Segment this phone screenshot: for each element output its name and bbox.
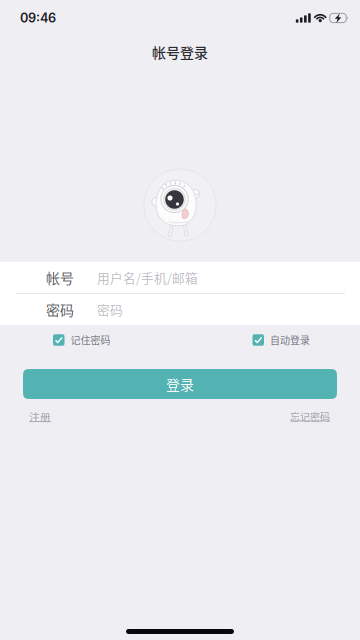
- staticText: 登录: [166, 374, 194, 394]
- staticText: 记住密码: [70, 333, 110, 347]
- staticText: 密码: [46, 299, 74, 320]
- button[interactable]: 自动登录: [252, 330, 310, 350]
- staticText: 忘记密码: [290, 409, 330, 424]
- staticText: 09:46: [20, 10, 56, 26]
- staticText: 注册: [29, 409, 51, 424]
- button[interactable]: 注册: [29, 405, 51, 428]
- staticText: 帐号登录: [152, 42, 208, 62]
- button[interactable]: 登录: [23, 369, 337, 399]
- button[interactable]: 记住密码: [53, 330, 110, 350]
- staticText: 用户名/手机/邮箱: [97, 268, 198, 287]
- staticText: 密码: [97, 300, 123, 319]
- button[interactable]: 忘记密码: [290, 405, 330, 428]
- staticText: 帐号: [46, 267, 74, 288]
- staticText: 自动登录: [270, 333, 310, 347]
